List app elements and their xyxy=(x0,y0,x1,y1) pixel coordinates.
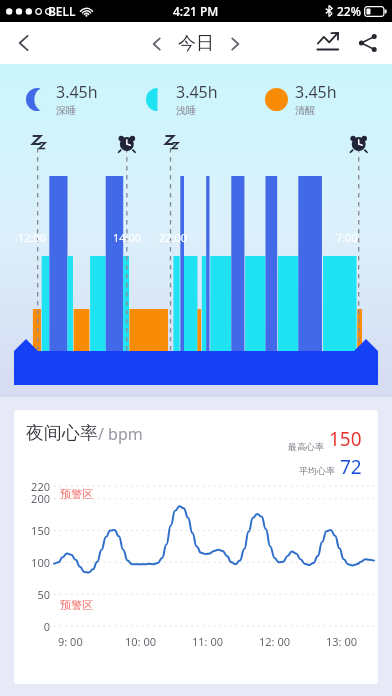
staticText: 13: 00 xyxy=(326,634,357,649)
button[interactable]: 12:00 xyxy=(0,134,392,397)
staticText: 清醒 xyxy=(295,104,315,117)
staticText: 3.45h xyxy=(56,81,98,103)
staticText: 72 xyxy=(340,454,362,476)
staticText: 3.45h xyxy=(176,81,218,103)
staticText: 220 xyxy=(16,479,50,494)
staticText: / bpm xyxy=(98,423,143,445)
staticText: 7:00 xyxy=(336,230,358,245)
button[interactable]: Trends xyxy=(308,23,348,63)
staticText: 最高心率 xyxy=(288,441,324,452)
button[interactable]: Next day xyxy=(219,28,251,60)
staticText: 150 xyxy=(329,426,362,452)
staticText: 100 xyxy=(16,555,50,570)
staticText: 11: 00 xyxy=(192,634,223,649)
staticText: 22:00 xyxy=(159,230,188,245)
button[interactable]: 3.45h xyxy=(265,81,384,117)
staticText: 预警区 xyxy=(60,487,93,501)
staticText: 12: 00 xyxy=(259,634,290,649)
staticText: 深睡 xyxy=(56,104,76,117)
button[interactable]: 3.45h xyxy=(146,81,265,117)
staticText: 3.45h xyxy=(295,81,337,103)
staticText: 平均心率 xyxy=(299,465,335,476)
button[interactable]: Back xyxy=(3,22,45,64)
staticText: 0 xyxy=(16,619,50,634)
button[interactable]: Share xyxy=(348,23,388,63)
staticText: BELL xyxy=(48,3,76,19)
staticText: 50 xyxy=(16,587,50,602)
staticText: 浅睡 xyxy=(176,104,196,117)
staticText: 200 xyxy=(16,491,50,506)
staticText: 预警区 xyxy=(60,598,93,612)
button[interactable]: Previous day xyxy=(141,28,173,60)
staticText: 12:00 xyxy=(18,230,47,245)
staticText: 10: 00 xyxy=(125,634,156,649)
staticText: 今日 xyxy=(178,32,214,55)
button[interactable]: 3.45h xyxy=(26,81,146,117)
button[interactable]: 今日 xyxy=(173,26,219,61)
staticText: 22% xyxy=(337,3,361,19)
staticText: 4:21 PM xyxy=(173,3,219,19)
staticText: 150 xyxy=(16,523,50,538)
staticText: 夜间心率 xyxy=(26,422,98,445)
staticText: 14:00 xyxy=(113,230,142,245)
staticText: 9: 00 xyxy=(58,634,83,649)
button[interactable]: 夜间心率 xyxy=(14,410,378,684)
